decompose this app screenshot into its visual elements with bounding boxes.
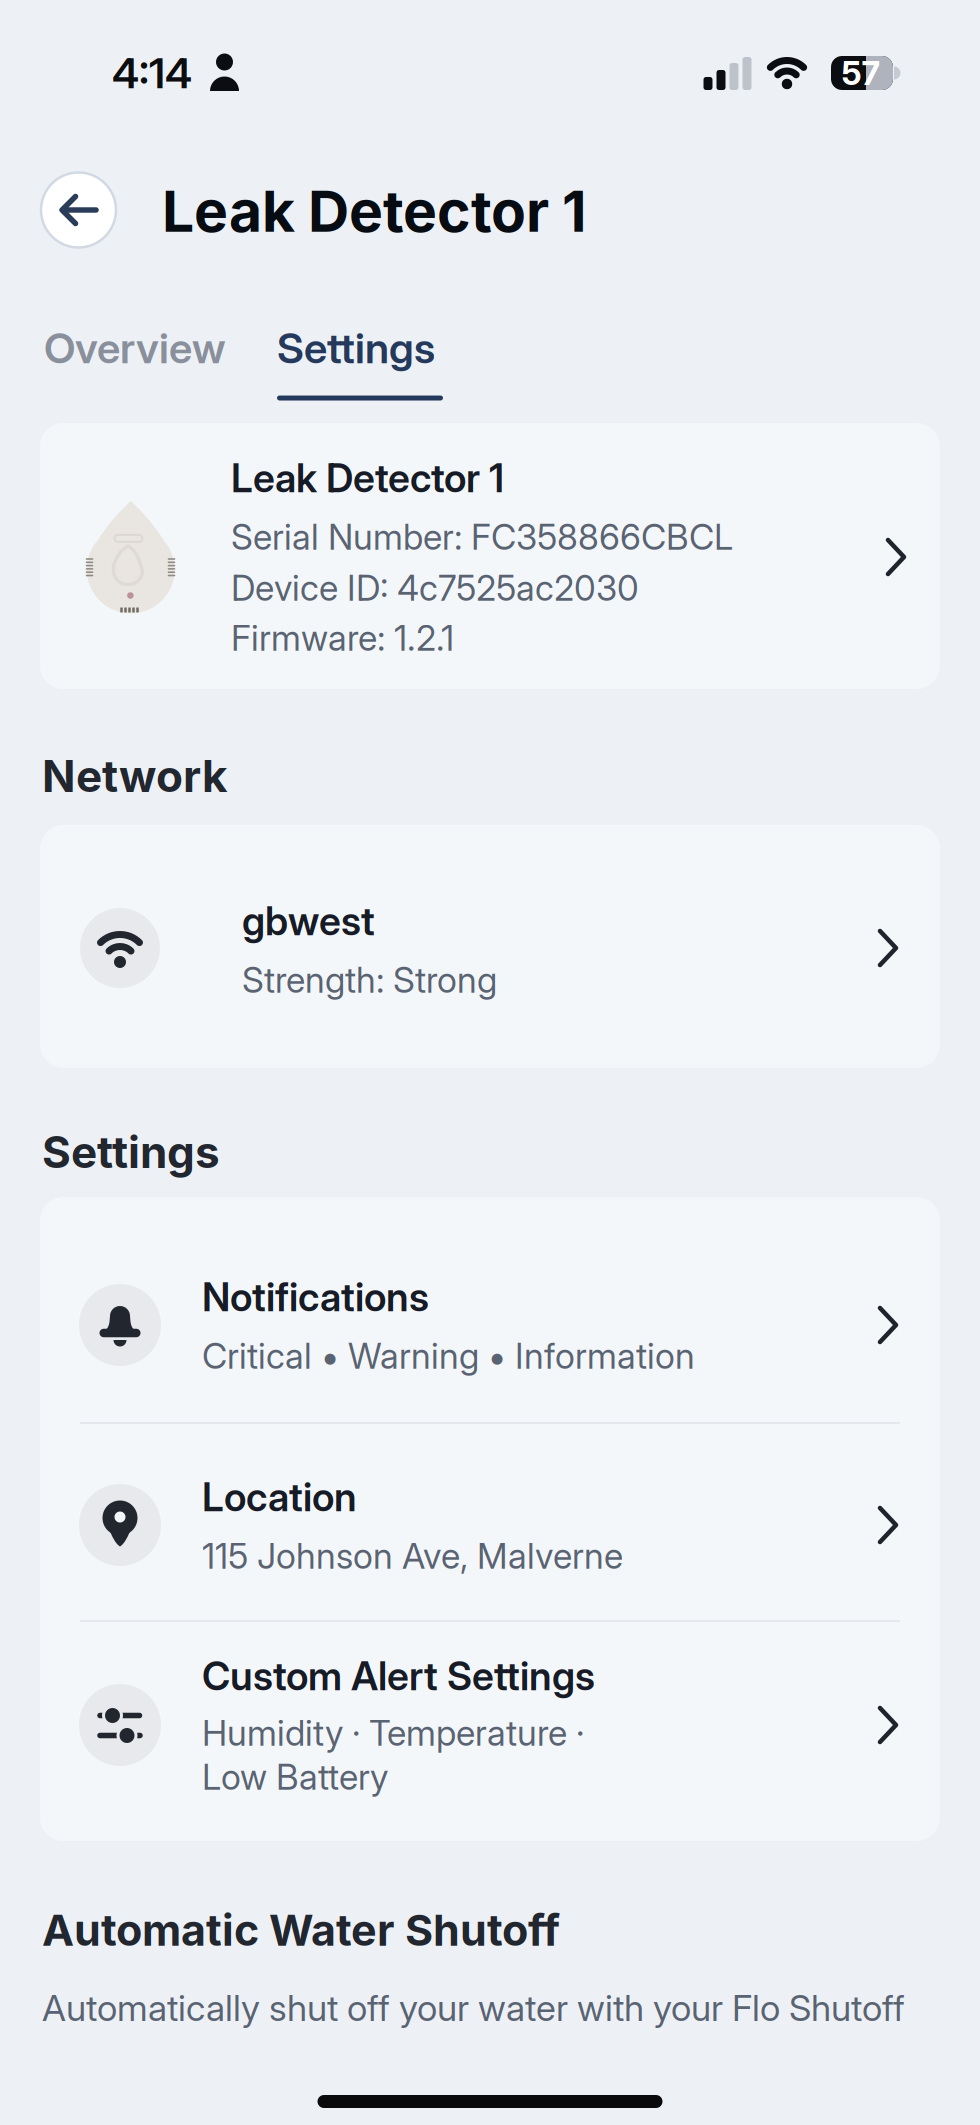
staticText: Leak Detector 1 bbox=[162, 176, 587, 245]
staticText: Critical • Warning • Information bbox=[202, 1335, 695, 1377]
staticText: Low Battery bbox=[202, 1756, 388, 1798]
staticText: 57 bbox=[841, 53, 880, 93]
staticText: Notifications bbox=[202, 1273, 429, 1321]
staticText: Automatically shut off your water with y… bbox=[42, 1986, 905, 2030]
staticText: Automatic Water Shutoff bbox=[42, 1904, 560, 1956]
button[interactable] bbox=[40, 1197, 940, 1423]
staticText: gbwest bbox=[242, 897, 375, 945]
staticText: Settings bbox=[277, 323, 435, 373]
staticText: Strength: Strong bbox=[242, 959, 497, 1001]
staticText: Settings bbox=[42, 1125, 220, 1179]
staticText: Leak Detector 1 bbox=[231, 454, 504, 502]
staticText: Firmware: 1.2.1 bbox=[231, 617, 454, 659]
staticText: Serial Number: FC358866CBCL bbox=[231, 516, 733, 558]
button[interactable]: Settings bbox=[277, 316, 517, 380]
staticText: Network bbox=[42, 749, 228, 803]
button[interactable]: Overview bbox=[44, 316, 304, 380]
button[interactable] bbox=[40, 825, 940, 1068]
button[interactable] bbox=[40, 1621, 940, 1841]
button[interactable] bbox=[40, 423, 940, 689]
staticText: 4:14 bbox=[112, 48, 192, 98]
staticText: 115 Johnson Ave, Malverne bbox=[202, 1535, 623, 1577]
staticText: Device ID: 4c7525ac2030 bbox=[231, 567, 639, 609]
staticText: Overview bbox=[44, 323, 225, 373]
button[interactable] bbox=[41, 172, 116, 247]
staticText: Humidity · Temperature · bbox=[202, 1712, 584, 1754]
staticText: Location bbox=[202, 1473, 357, 1521]
button[interactable] bbox=[40, 1423, 940, 1621]
staticText: Custom Alert Settings bbox=[202, 1652, 595, 1700]
